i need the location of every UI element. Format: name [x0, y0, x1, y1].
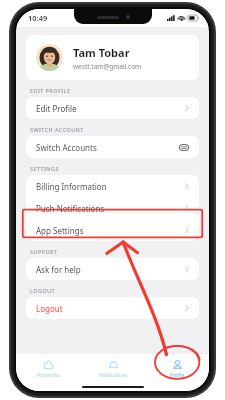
button[interactable]: Edit Profile	[26, 97, 199, 119]
staticText: Billing Information	[36, 181, 185, 192]
button[interactable]: Push Notifications	[26, 197, 199, 219]
other: Profile photo	[36, 44, 63, 71]
button[interactable]: Notifications	[81, 354, 145, 382]
staticText: 10:49	[28, 13, 48, 23]
staticText: SETTINGS	[30, 165, 59, 172]
staticText: Properties	[37, 372, 60, 378]
button[interactable]: Billing Information	[26, 175, 199, 197]
button[interactable]: Profile	[145, 354, 209, 382]
staticText: EDIT PROFILE	[30, 87, 71, 94]
button[interactable]: App Settings	[26, 219, 199, 241]
staticText: Profile	[170, 372, 184, 378]
staticText: Logout	[36, 303, 185, 314]
staticText: Edit Profile	[36, 103, 185, 114]
button[interactable]: Switch Accounts	[26, 136, 199, 158]
staticText: Tam Tobar	[73, 45, 130, 60]
staticText: Switch Accounts	[36, 142, 179, 153]
staticText: LOGOUT	[30, 287, 55, 294]
button[interactable]: Properties	[16, 354, 81, 382]
button[interactable]: Profile photo	[26, 35, 199, 80]
button[interactable]: Ask for help	[26, 258, 199, 280]
staticText: Push Notifications	[36, 203, 185, 214]
button[interactable]: Logout	[26, 297, 199, 319]
staticText: App Settings	[36, 225, 185, 236]
staticText: westt.tam@gmail.com	[73, 62, 142, 71]
staticText: Ask for help	[36, 264, 185, 275]
staticText: SWITCH ACCOUNT	[30, 126, 84, 133]
staticText: Notifications	[99, 372, 127, 378]
staticText: SUPPORT	[30, 248, 58, 255]
